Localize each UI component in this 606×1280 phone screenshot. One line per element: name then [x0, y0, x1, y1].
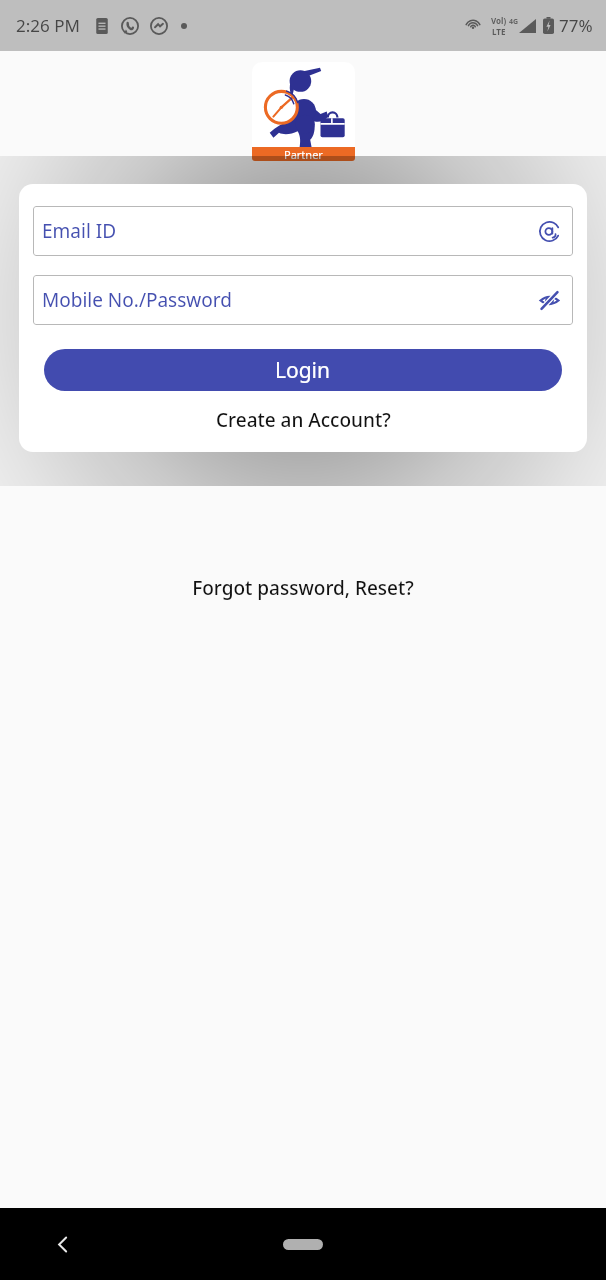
button[interactable]: Create an Account? [33, 402, 573, 438]
staticText: Email ID [42, 218, 539, 244]
staticText: 2:26 PM [16, 14, 80, 37]
staticText: Forgot password, Reset? [192, 575, 414, 601]
button[interactable]: Forgot password, Reset? [180, 569, 426, 607]
other: Email [539, 221, 560, 242]
staticText: Vol) [491, 15, 507, 26]
staticText: Create an Account? [216, 407, 391, 433]
button[interactable]: Back [39, 1220, 87, 1268]
other: Show password [539, 290, 560, 311]
staticText: Login [275, 356, 331, 385]
button[interactable]: Mobile No./Password [33, 275, 573, 325]
button[interactable]: Home [275, 1230, 331, 1258]
staticText: 77% [559, 14, 593, 37]
button[interactable]: Email ID [33, 206, 573, 256]
staticText: Partner [284, 147, 323, 161]
staticText: 4G [509, 17, 519, 27]
button[interactable]: Login [44, 349, 562, 391]
staticText: Mobile No./Password [42, 287, 539, 313]
staticText: LTE [492, 26, 506, 37]
